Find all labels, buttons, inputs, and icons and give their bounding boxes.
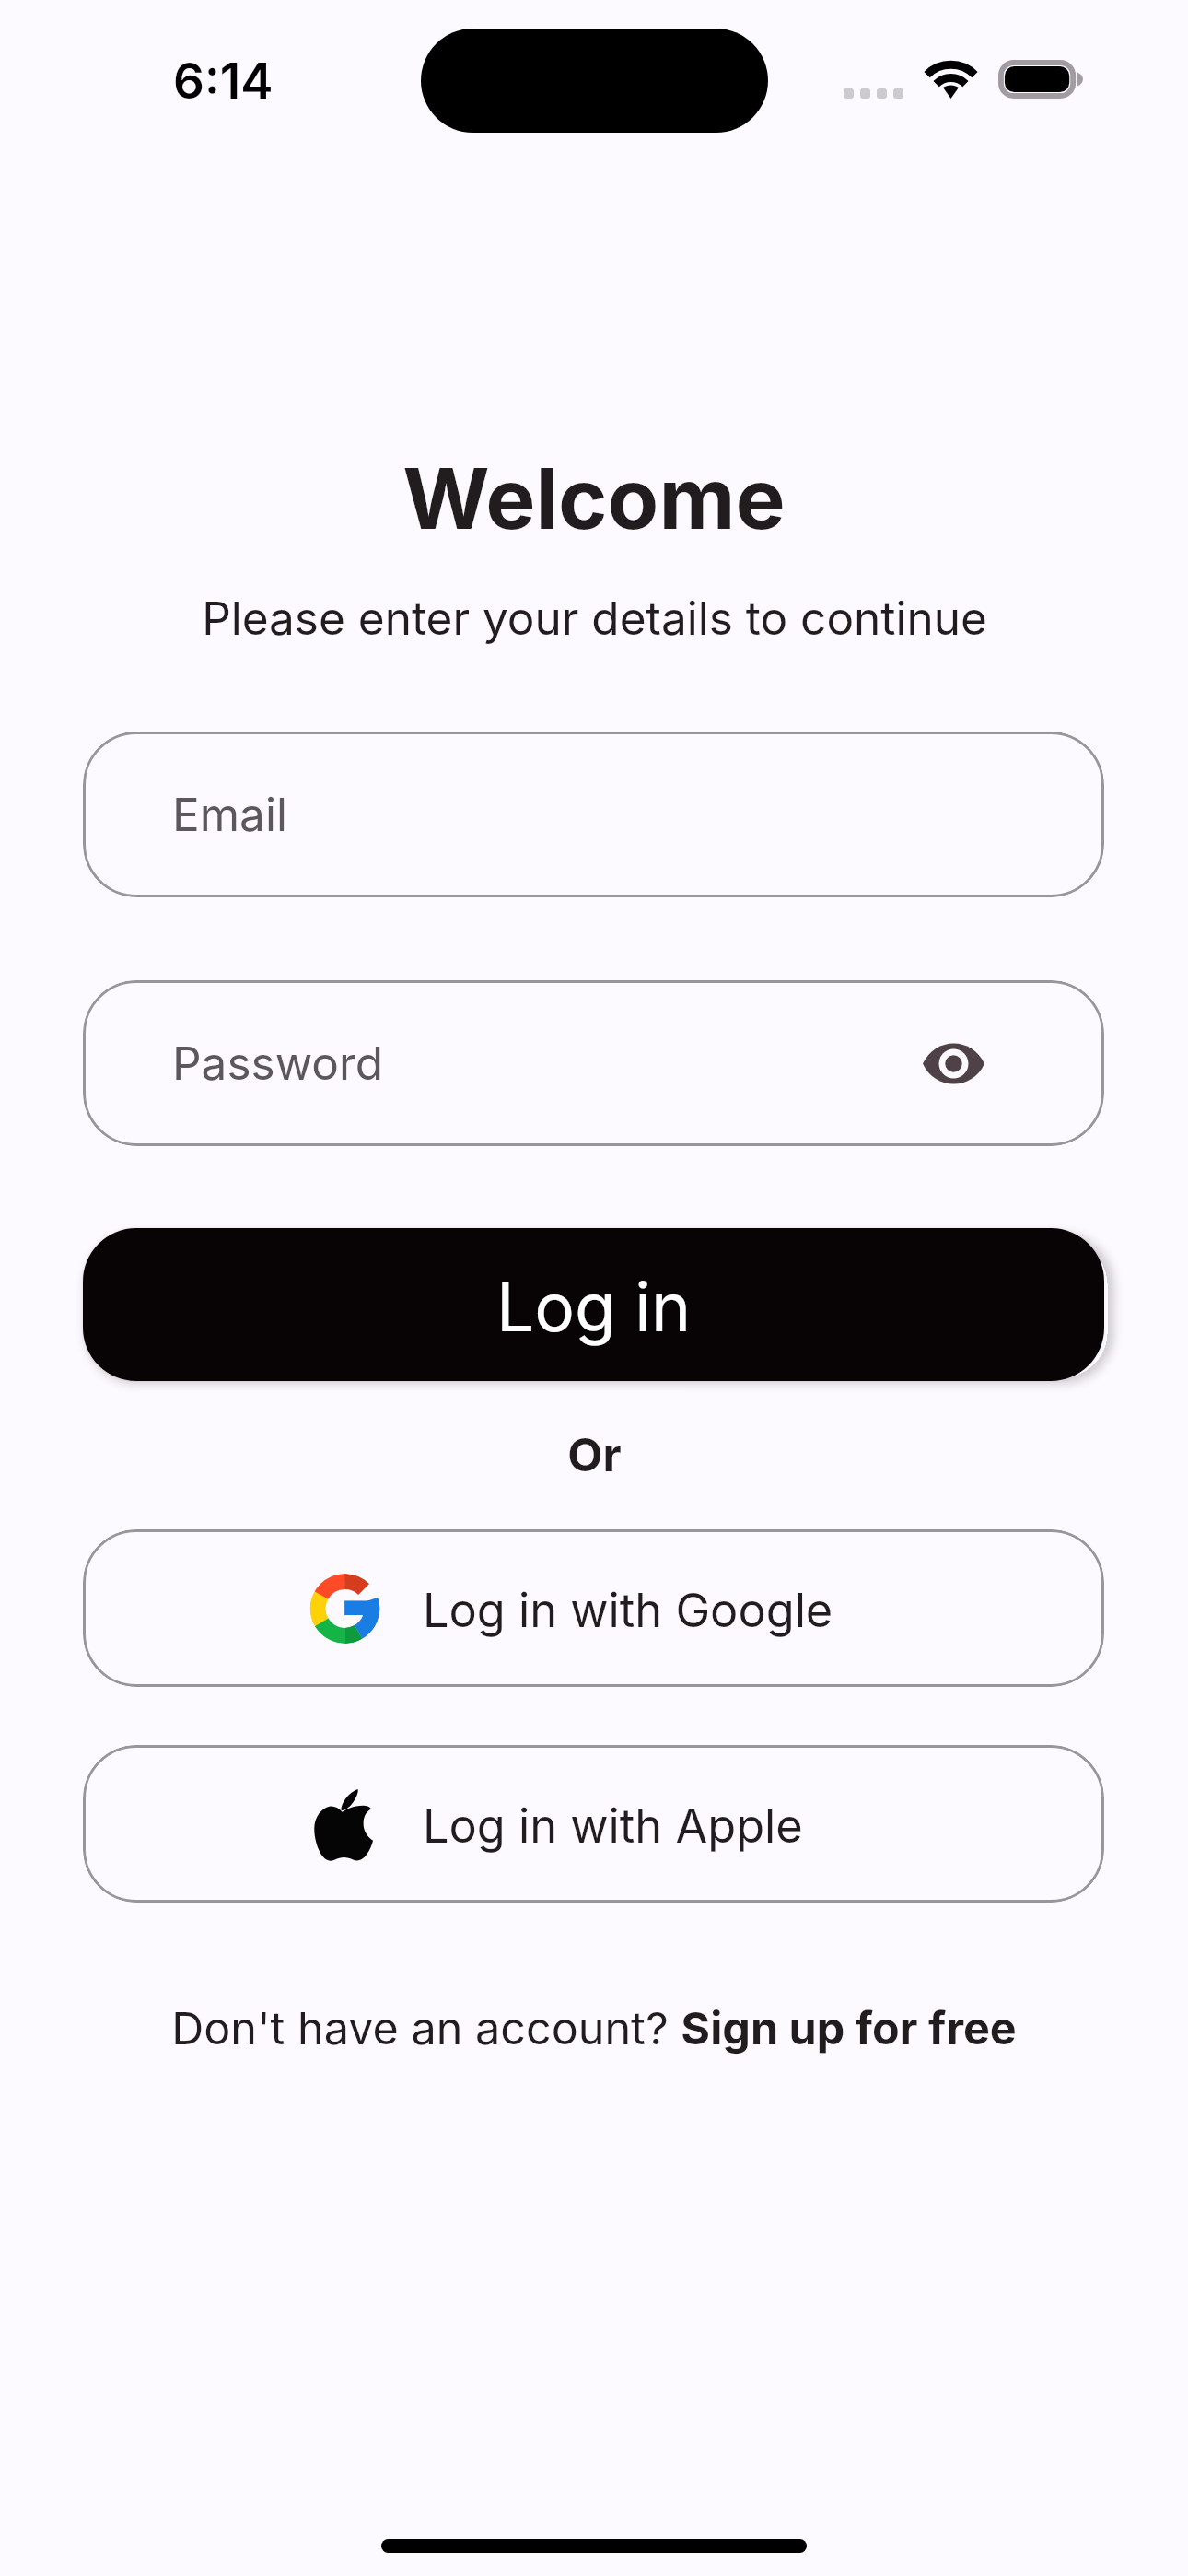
staticText: Log in with Apple: [423, 1797, 803, 1854]
staticText: Or: [567, 1427, 622, 1482]
staticText: 6:14: [173, 52, 274, 111]
staticText: Log in: [496, 1266, 692, 1347]
button[interactable]: Log in with Google: [83, 1529, 1104, 1687]
staticText: Log in with Google: [423, 1582, 833, 1638]
button[interactable]: Don't have an account? Sign up for free: [171, 2001, 1017, 2055]
staticText: Password: [172, 1036, 384, 1091]
button[interactable]: Email: [83, 732, 1104, 897]
staticText: Email: [172, 787, 287, 842]
button[interactable]: Log in: [83, 1228, 1104, 1381]
button[interactable]: Password: [83, 980, 1104, 1146]
button[interactable]: Log in with Apple: [83, 1745, 1104, 1903]
button[interactable]: Show password: [909, 1019, 997, 1107]
staticText: Welcome: [402, 448, 786, 549]
staticText: Please enter your details to continue: [202, 591, 987, 646]
